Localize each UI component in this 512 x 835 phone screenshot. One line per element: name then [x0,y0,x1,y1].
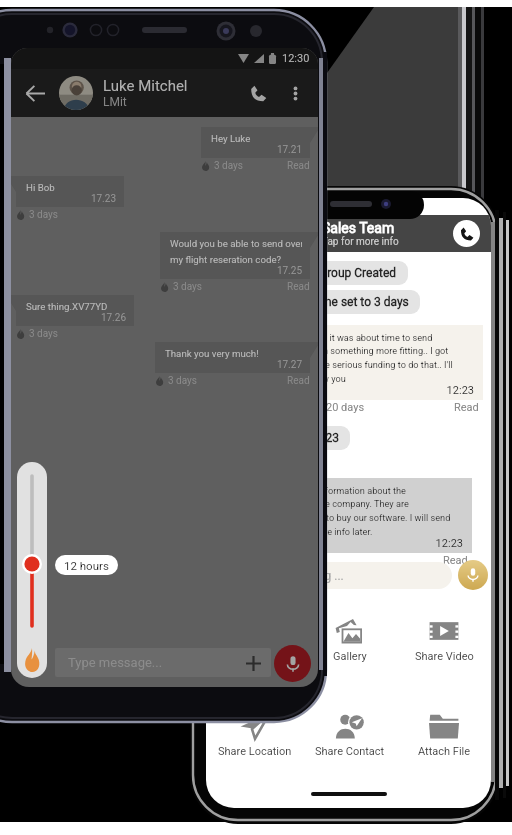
button[interactable]: Thank you very much! [155,342,310,373]
staticText: Thank you very much! [165,348,259,359]
staticText: Share Location [218,745,292,758]
button[interactable]: Gallery [303,618,397,663]
staticText: 12:30 [282,52,310,65]
staticText: Sure thing.XV77YD [26,301,108,312]
button[interactable]: 12:23 [263,426,350,450]
button[interactable]: Call [453,220,480,247]
staticText: 3 days [173,281,202,293]
staticText: 12:23 [294,537,463,550]
button[interactable]: Sales Team [206,215,491,252]
button[interactable]: Call [244,79,272,107]
button[interactable]: Hi Bob [16,176,124,207]
button[interactable]: Share Video [397,618,491,663]
staticText: Type message... [68,655,163,670]
staticText: 3 days [214,160,243,172]
staticText: Gallery [333,650,367,663]
staticText: 17.27 [165,359,302,371]
staticText: Type something ... [246,569,344,583]
button[interactable]: Back [19,77,51,109]
staticText: Would you be able to send over my flight… [170,238,302,265]
staticText: Hi Bob [26,182,55,193]
staticText: LMit [103,95,127,109]
button[interactable]: 12 hours [55,555,118,575]
staticText: 20 days [326,401,365,414]
button[interactable]: Attach File [397,713,491,758]
staticText: Attach File [418,745,471,758]
staticText: 12:23 [307,384,474,397]
staticText: 17.23 [26,193,116,205]
staticText: Sales Team [322,220,395,236]
button[interactable]: Disappearing message timer [17,462,47,678]
button[interactable]: Type message... [55,648,271,677]
staticText: Tap for more info [322,236,399,248]
staticText: 12:23 [309,431,339,445]
staticText: Hey Luke [211,133,251,144]
staticText: Read [287,281,310,293]
button[interactable]: Group Created [287,261,408,285]
staticText: Group Created [319,266,397,280]
button[interactable]: Would you be able to send over my flight… [160,232,310,279]
staticText: 3 days [168,375,197,387]
staticText: Read [287,160,310,172]
staticText: 17.26 [26,312,126,324]
staticText: 17.25 [170,265,302,277]
staticText: Read [454,401,479,414]
button[interactable]: More information about the software comp… [283,478,472,553]
staticText: Share Video [415,650,474,663]
staticText: Share Contact [315,745,385,758]
button[interactable]: Share Location [208,713,302,758]
staticText: Read [287,375,310,387]
button[interactable]: Record voice message [274,645,311,682]
button[interactable]: Yeah it was about time to send them some… [296,325,483,400]
button[interactable]: Back [11,69,318,117]
staticText: 3 days [29,328,58,340]
staticText: 3 days [29,209,58,221]
staticText: Read [443,554,468,567]
staticText: Yeah it was about time to send them some… [307,332,453,384]
button[interactable]: Hey Luke [201,127,310,158]
button[interactable]: Type something ... [232,562,452,589]
staticText: Disappearing time set to 3 days [241,295,409,309]
button[interactable]: More options [282,80,308,106]
button[interactable]: Add attachment [243,653,263,673]
button[interactable]: Record voice message [458,560,488,590]
button[interactable]: Sure thing.XV77YD [16,295,134,326]
staticText: 12 hours [64,559,109,572]
staticText: 17.21 [211,144,302,156]
button[interactable]: Disappearing time set to 3 days [223,290,420,314]
button[interactable]: Share Contact [303,713,397,758]
staticText: Luke Mitchel [103,77,188,95]
staticText: More information about the software comp… [294,485,451,537]
